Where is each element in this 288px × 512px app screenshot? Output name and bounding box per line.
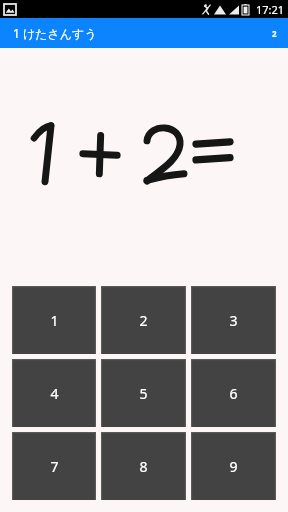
staticText: 4 bbox=[50, 384, 59, 403]
button[interactable]: 4 bbox=[12, 359, 96, 427]
staticText: 9 bbox=[229, 457, 238, 476]
staticText: 5 bbox=[139, 384, 148, 403]
button[interactable]: 8 bbox=[101, 432, 186, 500]
staticText: 17:21 bbox=[256, 2, 285, 17]
button[interactable]: 5 bbox=[101, 359, 186, 427]
staticText: 7 bbox=[50, 457, 59, 476]
staticText: 1 けたさんすう bbox=[13, 25, 97, 41]
button[interactable]: 3 bbox=[191, 286, 276, 354]
staticText: 8 bbox=[139, 457, 148, 476]
staticText: 2 bbox=[139, 311, 148, 330]
staticText: 1 bbox=[50, 311, 59, 330]
button[interactable]: 9 bbox=[191, 432, 276, 500]
staticText: 6 bbox=[229, 384, 238, 403]
button[interactable]: 1 bbox=[12, 286, 96, 354]
button[interactable]: 6 bbox=[191, 359, 276, 427]
staticText: 3 bbox=[229, 311, 238, 330]
staticText: 2 bbox=[272, 28, 277, 39]
button[interactable]: 2 bbox=[101, 286, 186, 354]
button[interactable]: 7 bbox=[12, 432, 96, 500]
button[interactable]: Level bbox=[266, 25, 282, 41]
